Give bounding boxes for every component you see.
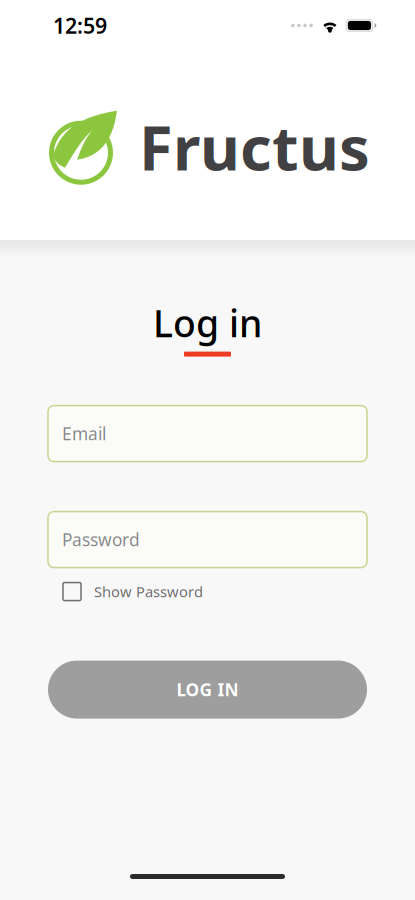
button[interactable]: Email: [48, 406, 367, 462]
button[interactable]: LOG IN: [48, 661, 367, 719]
staticText: Log in: [153, 298, 262, 348]
staticText: LOG IN: [176, 678, 238, 701]
staticText: Password: [62, 528, 140, 551]
button[interactable]: Password: [48, 512, 367, 568]
staticText: Fructus: [139, 106, 370, 187]
staticText: 12:59: [53, 11, 107, 40]
button[interactable]: Show Password: [48, 579, 203, 605]
staticText: Show Password: [94, 582, 203, 601]
staticText: Email: [62, 422, 106, 445]
